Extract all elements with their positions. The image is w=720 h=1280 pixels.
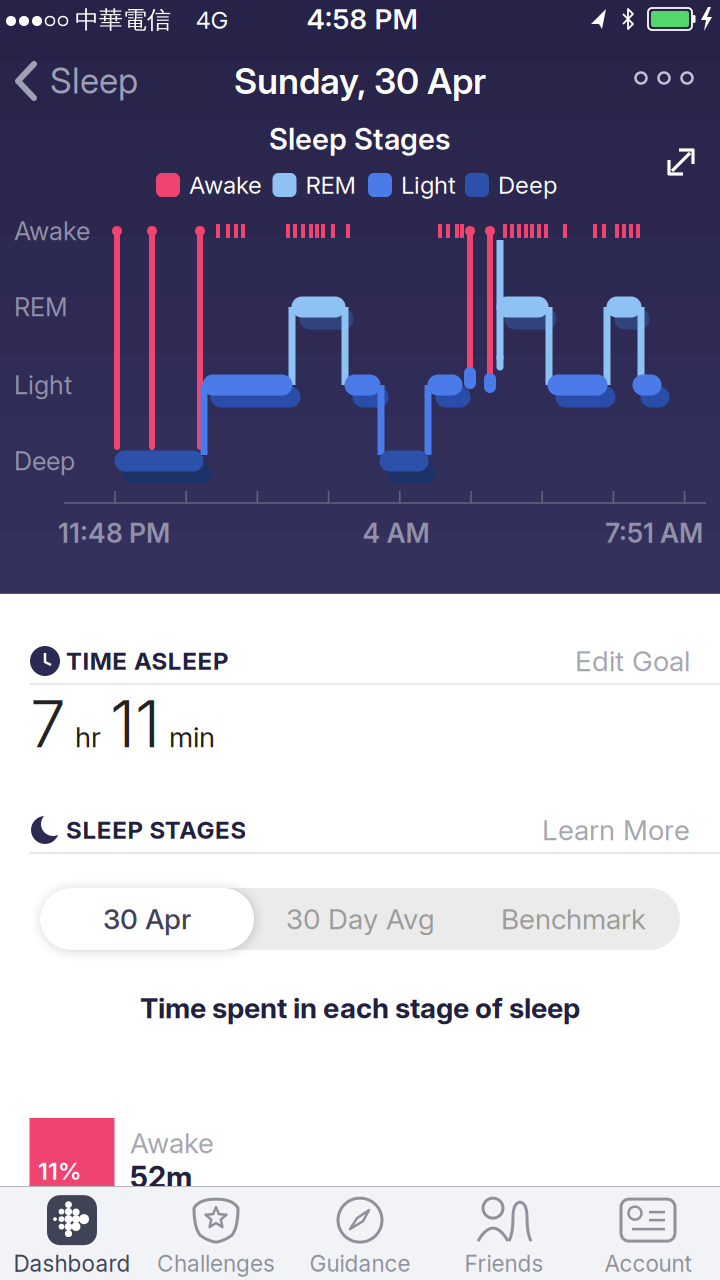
staticText: 30 Apr [103, 902, 191, 935]
staticText: 4 AM [362, 517, 429, 549]
button[interactable]: Dashboard [1, 1191, 143, 1280]
button[interactable]: Challenges [145, 1191, 287, 1280]
staticText: 11 [110, 686, 160, 762]
button[interactable]: Account [577, 1191, 719, 1280]
button[interactable]: 30 Day Avg [254, 888, 467, 950]
button[interactable]: Benchmark [467, 888, 680, 950]
staticText: Time spent in each stage of sleep [140, 991, 580, 1024]
staticText: Sleep [50, 61, 138, 101]
staticText: 7 [30, 686, 66, 762]
staticText: Light [401, 171, 456, 199]
staticText: Account [604, 1250, 691, 1277]
staticText: Sunday, 30 Apr [234, 60, 486, 102]
staticText: 52m [130, 1160, 192, 1194]
staticText: Awake [14, 216, 90, 246]
button[interactable]: Guidance [289, 1191, 431, 1280]
staticText: 中華電信 [75, 5, 171, 35]
staticText: Deep [498, 171, 557, 199]
staticText: 11:48 PM [58, 517, 170, 549]
staticText: Awake [130, 1126, 214, 1159]
staticText: Deep [14, 446, 75, 476]
staticText: 4G [195, 6, 228, 34]
staticText: REM [305, 171, 355, 199]
staticText: Dashboard [13, 1250, 130, 1277]
button[interactable]: Friends [433, 1191, 575, 1280]
staticText: Light [14, 370, 72, 400]
staticText: SLEEP STAGES [66, 816, 246, 844]
staticText: 7:51 AM [605, 517, 703, 549]
staticText: Guidance [309, 1250, 410, 1277]
staticText: hr [75, 721, 101, 754]
button[interactable]: Expand chart [664, 145, 698, 179]
staticText: 4:58 PM [306, 2, 417, 35]
button[interactable]: More [619, 53, 709, 103]
staticText: 11% [38, 1157, 82, 1185]
staticText: Friends [464, 1250, 543, 1277]
button[interactable]: Learn More [510, 813, 690, 846]
staticText: Sleep Stages [269, 122, 451, 156]
button[interactable]: Sleep [14, 60, 138, 102]
staticText: TIME ASLEEP [66, 647, 228, 675]
staticText: Learn More [542, 813, 690, 846]
staticText: Benchmark [501, 902, 646, 935]
staticText: min [169, 721, 215, 754]
staticText: Awake [189, 171, 262, 199]
staticText: Challenges [157, 1250, 275, 1277]
button[interactable]: 30 Apr [40, 888, 254, 950]
button[interactable]: Edit Goal [530, 644, 690, 677]
staticText: REM [14, 292, 68, 322]
staticText: Edit Goal [575, 644, 690, 677]
staticText: 30 Day Avg [286, 902, 435, 935]
